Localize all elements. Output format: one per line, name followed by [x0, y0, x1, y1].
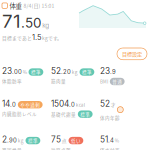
staticText: 1504 — [51, 99, 69, 109]
staticText: 筋質点数 — [51, 146, 71, 150]
staticText: 内臓脂肪レベル — [2, 110, 37, 117]
staticText: 52 — [51, 66, 61, 76]
staticText: 標準 — [82, 69, 92, 75]
staticText: 23 — [2, 66, 12, 76]
staticText: BMI — [100, 78, 108, 85]
staticText: 52 — [100, 99, 110, 109]
staticText: kgです。 — [42, 34, 62, 41]
staticText: 点 — [62, 137, 67, 144]
staticText: 8/4(日) 15:01 — [23, 2, 54, 9]
staticText: kg — [18, 137, 24, 144]
button[interactable]: 1504 — [51, 99, 99, 118]
staticText: 標準 — [80, 111, 90, 117]
staticText: kg — [42, 22, 49, 29]
staticText: .50 — [21, 15, 41, 31]
staticText: .9 — [110, 68, 116, 75]
button[interactable]: 2 — [2, 134, 50, 150]
staticText: 体脂肪率 — [2, 78, 22, 84]
staticText: kg — [72, 68, 78, 75]
staticText: 体水分率 — [100, 146, 120, 150]
button[interactable]: 75 — [51, 134, 99, 150]
staticText: 2 — [2, 134, 7, 144]
staticText: .20 — [61, 68, 71, 75]
staticText: 51 — [100, 134, 108, 144]
staticText: やや過剰 — [20, 101, 40, 108]
staticText: kcal — [76, 101, 85, 108]
button[interactable]: 23 — [100, 66, 148, 85]
staticText: 筋肉量 — [51, 78, 66, 84]
staticText: .00 — [12, 68, 22, 75]
staticText: .0 — [10, 101, 16, 108]
button[interactable]: 目標設定 — [117, 48, 147, 60]
staticText: 低い — [71, 137, 81, 144]
staticText: 推定骨量 — [2, 146, 22, 150]
staticText: 1.5 — [32, 33, 42, 42]
staticText: 基礎代謝量 — [51, 111, 76, 117]
staticText: 標準 — [28, 137, 38, 144]
staticText: % — [23, 68, 27, 75]
button[interactable]: 52 — [51, 66, 99, 84]
staticText: 才 — [111, 101, 116, 108]
staticText: 目標まであと — [2, 34, 32, 41]
button[interactable]: 14 — [2, 99, 50, 117]
staticText: 75 — [51, 134, 61, 144]
staticText: 体重 — [9, 1, 21, 10]
staticText: % — [115, 137, 119, 144]
staticText: .4 — [108, 137, 114, 144]
staticText: 標準 — [31, 69, 41, 75]
staticText: 体内年齢 — [100, 114, 120, 121]
staticText: 14 — [2, 99, 10, 109]
staticText: 71 — [2, 10, 21, 32]
staticText: 普通 — [112, 78, 122, 85]
staticText: 目標設定 — [122, 50, 142, 57]
button[interactable]: 52 — [100, 99, 148, 121]
staticText: .0 — [69, 101, 75, 108]
button[interactable]: 23 — [2, 66, 50, 84]
staticText: 23 — [100, 66, 110, 76]
button[interactable]: 51 — [100, 134, 148, 150]
staticText: .90 — [7, 137, 17, 144]
